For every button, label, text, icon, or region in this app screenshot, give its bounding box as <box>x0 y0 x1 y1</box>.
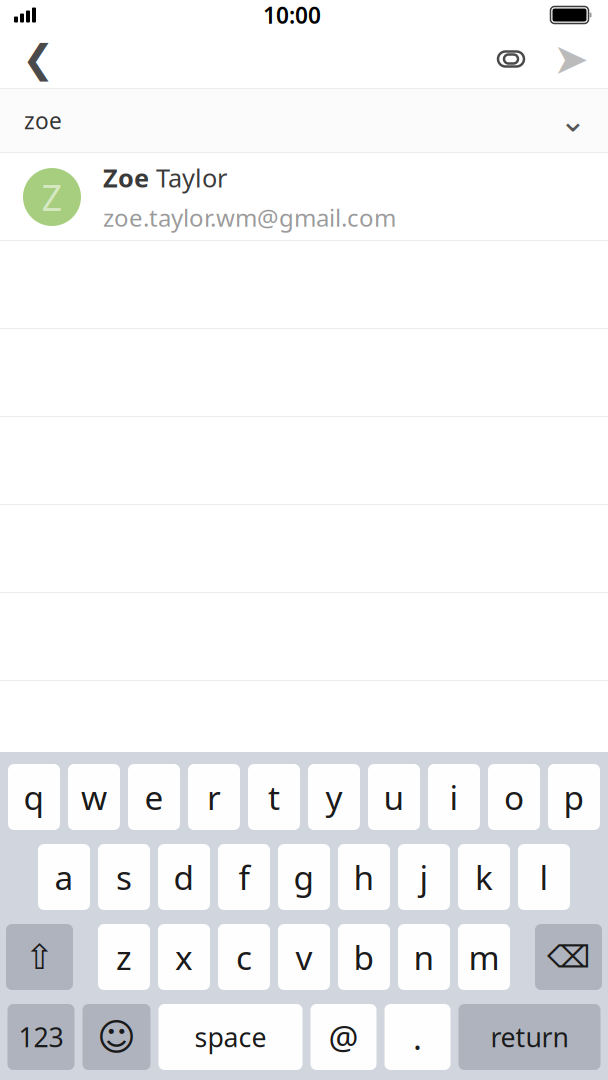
button[interactable]: Emoji <box>82 1004 150 1070</box>
staticText: l <box>539 855 548 899</box>
staticText: zoe <box>24 105 62 135</box>
button[interactable]: Send <box>540 30 602 88</box>
button[interactable]: l <box>518 844 570 910</box>
button[interactable]: Shift <box>6 924 73 990</box>
button[interactable]: o <box>488 764 540 830</box>
button[interactable]: q <box>8 764 60 830</box>
staticText: zoe.taylor.wm@gmail.com <box>103 201 396 233</box>
button[interactable]: return <box>458 1004 600 1070</box>
staticText: w <box>81 775 107 819</box>
button[interactable]: r <box>188 764 240 830</box>
staticText: ☺ <box>97 1016 136 1058</box>
staticText: j <box>419 855 428 899</box>
button[interactable]: u <box>368 764 420 830</box>
button[interactable]: k <box>458 844 510 910</box>
staticText: s <box>116 855 132 899</box>
staticText: . <box>413 1015 422 1059</box>
button[interactable]: j <box>398 844 450 910</box>
staticText: ❮ <box>22 37 54 81</box>
staticText: b <box>353 935 374 979</box>
staticText: 10:00 <box>263 0 321 30</box>
staticText: Taylor <box>156 161 227 194</box>
staticText: y <box>325 775 342 819</box>
staticText: r <box>207 775 221 819</box>
staticText: d <box>173 855 194 899</box>
staticText: z <box>116 935 132 979</box>
staticText: ⌄ <box>559 102 586 139</box>
button[interactable]: Back <box>6 30 70 88</box>
button[interactable]: w <box>68 764 120 830</box>
staticText: u <box>383 775 404 819</box>
staticText: return <box>490 1019 568 1055</box>
button[interactable]: y <box>308 764 360 830</box>
button[interactable]: f <box>218 844 270 910</box>
button[interactable]: i <box>428 764 480 830</box>
button[interactable]: c <box>218 924 270 990</box>
staticText: Z <box>41 173 62 221</box>
button[interactable]: e <box>128 764 180 830</box>
staticText: @ <box>328 1015 358 1059</box>
button[interactable]: Show Cc and Bcc <box>550 97 596 143</box>
staticText: e <box>144 775 163 819</box>
staticText: q <box>23 775 44 819</box>
staticText: m <box>468 935 499 979</box>
staticText: c <box>236 935 252 979</box>
button[interactable]: Z <box>0 153 608 241</box>
staticText: n <box>413 935 434 979</box>
button[interactable]: d <box>158 844 210 910</box>
staticText: ⌫ <box>547 940 590 974</box>
button[interactable]: Backspace <box>535 924 602 990</box>
button[interactable]: v <box>278 924 330 990</box>
staticText: space <box>194 1019 266 1055</box>
staticText: h <box>353 855 374 899</box>
staticText: ➤ <box>553 35 589 83</box>
staticText: o <box>504 775 524 819</box>
button[interactable]: g <box>278 844 330 910</box>
button[interactable]: p <box>548 764 600 830</box>
staticText: Zoe <box>103 161 156 194</box>
button[interactable]: b <box>338 924 390 990</box>
button[interactable]: h <box>338 844 390 910</box>
button[interactable]: s <box>98 844 150 910</box>
button[interactable]: space <box>158 1004 302 1070</box>
staticText: 123 <box>18 1019 63 1055</box>
staticText: f <box>238 855 249 899</box>
button[interactable]: Numbers <box>7 1004 74 1070</box>
staticText: g <box>293 855 314 899</box>
button[interactable]: x <box>158 924 210 990</box>
button[interactable]: a <box>38 844 90 910</box>
button[interactable]: z <box>98 924 150 990</box>
staticText: v <box>295 935 312 979</box>
staticText: i <box>449 775 458 819</box>
button[interactable]: n <box>398 924 450 990</box>
button[interactable]: m <box>458 924 510 990</box>
staticText: x <box>175 935 193 979</box>
button[interactable]: Attach file <box>482 30 540 88</box>
staticText: p <box>563 775 584 819</box>
staticText: ⇧ <box>25 937 54 977</box>
staticText: k <box>475 855 493 899</box>
button[interactable]: @ <box>310 1004 376 1070</box>
button[interactable]: t <box>248 764 300 830</box>
staticText: t <box>268 775 280 819</box>
button[interactable]: . <box>384 1004 450 1070</box>
staticText: a <box>54 855 73 899</box>
